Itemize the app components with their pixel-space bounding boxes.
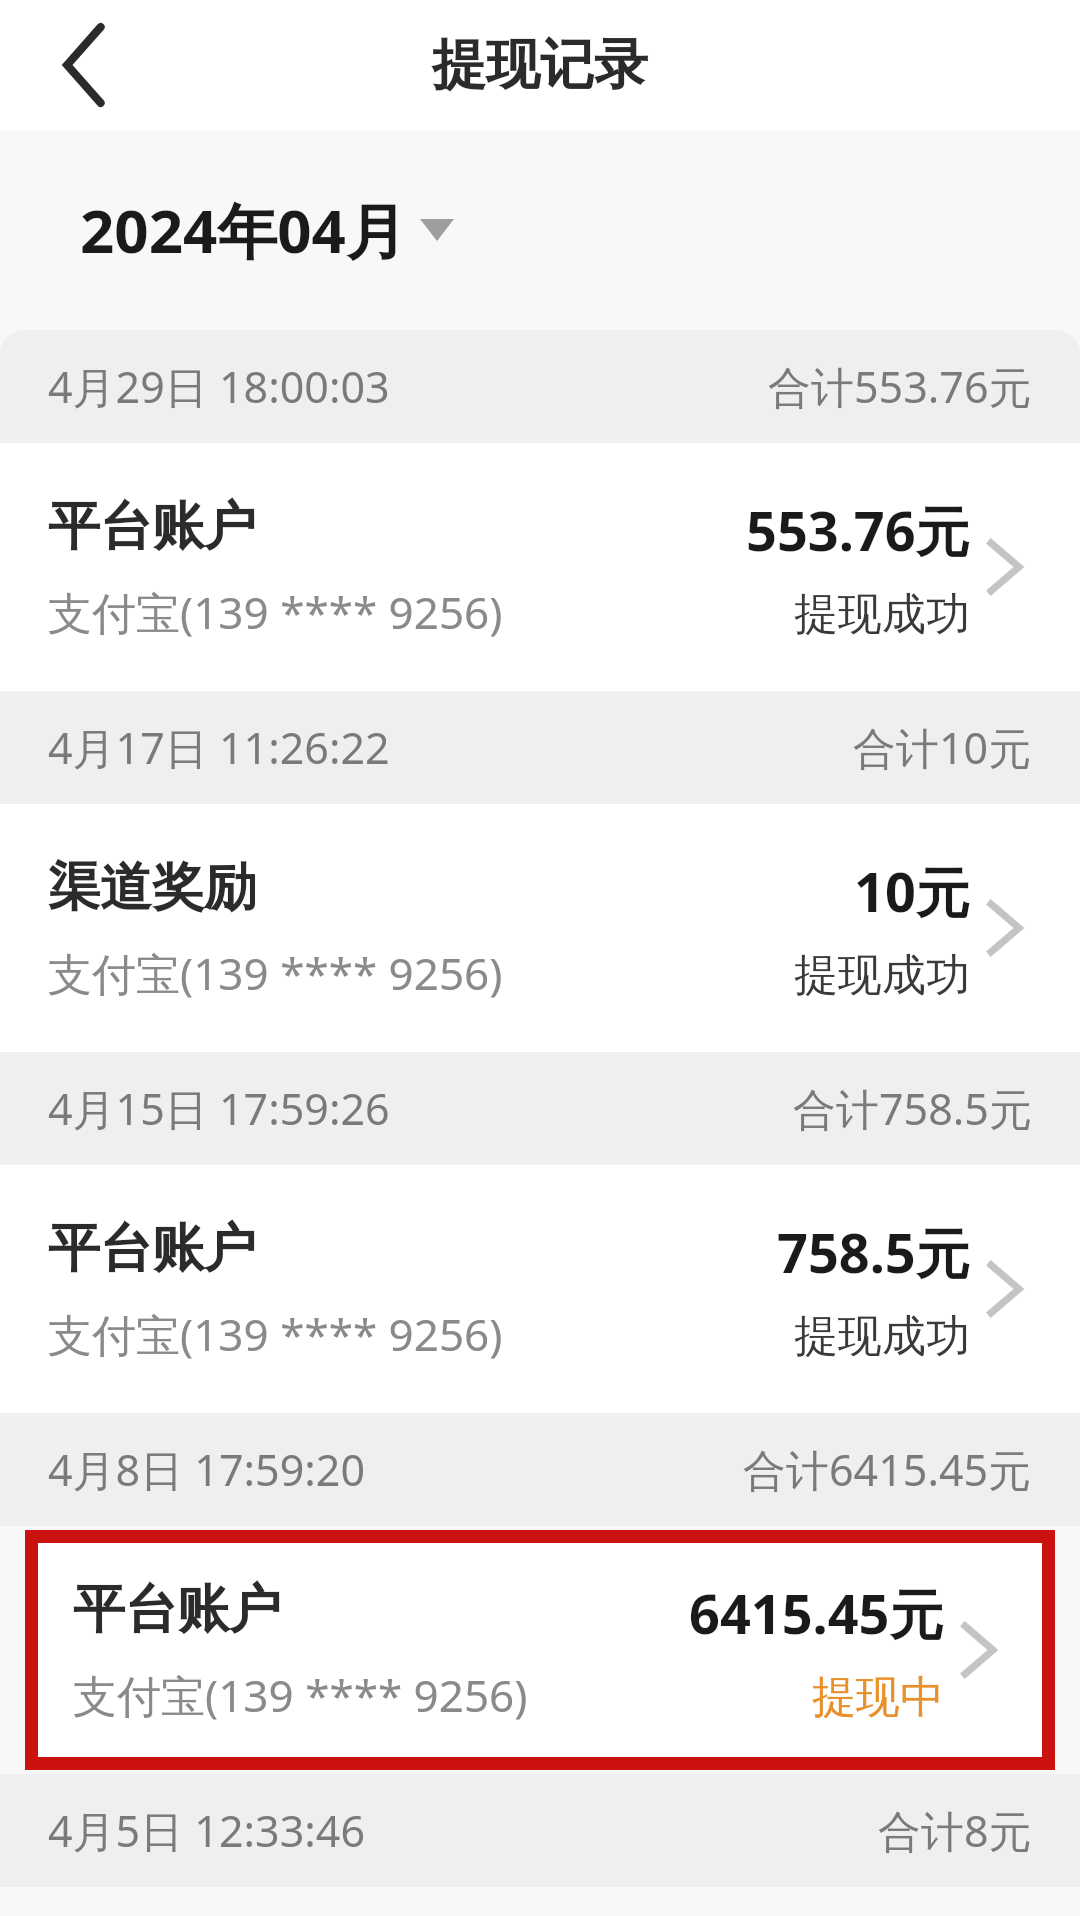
staticText: 4月8日 17:59:20 — [48, 1440, 365, 1499]
staticText: 合计553.76元 — [768, 357, 1032, 416]
staticText: 4月17日 11:26:22 — [48, 718, 390, 777]
staticText: 758.5元 — [777, 1215, 970, 1289]
staticText: 支付宝(139 **** 9256) — [48, 1304, 503, 1364]
staticText: 6415.45元 — [689, 1576, 944, 1650]
staticText: 提现成功 — [794, 948, 970, 1003]
button[interactable]: 渠道奖励 — [0, 804, 1080, 1052]
staticText: 支付宝(139 **** 9256) — [48, 582, 503, 642]
button[interactable]: 平台账户 — [0, 443, 1080, 691]
staticText: 支付宝(139 **** 9256) — [48, 943, 503, 1003]
button[interactable]: 平台账户 — [38, 1543, 1042, 1757]
staticText: 合计6415.45元 — [743, 1440, 1032, 1499]
staticText: 提现记录 — [0, 31, 1080, 99]
staticText: 支付宝(139 **** 9256) — [73, 1665, 528, 1725]
staticText: 2024年04月 — [80, 189, 406, 271]
staticText: 4月15日 17:59:26 — [48, 1079, 390, 1138]
staticText: 10元 — [854, 854, 970, 928]
staticText: 提现成功 — [794, 1309, 970, 1364]
button[interactable]: Back — [30, 10, 140, 120]
staticText: 合计10元 — [853, 718, 1032, 777]
staticText: 平台账户 — [48, 494, 256, 560]
staticText: 合计758.5元 — [793, 1079, 1032, 1138]
staticText: 平台账户 — [73, 1577, 281, 1643]
staticText: 553.76元 — [746, 493, 970, 567]
button[interactable]: 2024年04月 — [80, 189, 454, 271]
staticText: 提现成功 — [794, 587, 970, 642]
staticText: 合计8元 — [878, 1801, 1032, 1860]
staticText: 4月5日 12:33:46 — [48, 1801, 365, 1860]
button[interactable]: 平台账户 — [0, 1165, 1080, 1413]
staticText: 平台账户 — [48, 1216, 256, 1282]
staticText: 4月29日 18:00:03 — [48, 357, 390, 416]
staticText: 提现中 — [812, 1670, 944, 1725]
staticText: 渠道奖励 — [48, 855, 256, 921]
